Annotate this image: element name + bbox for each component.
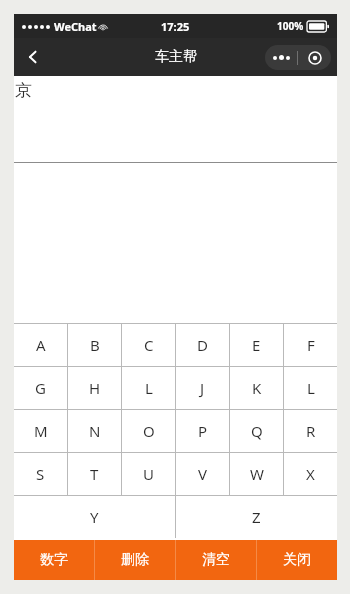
staticText: H	[89, 378, 101, 398]
button[interactable]: L	[284, 367, 337, 409]
staticText: X	[306, 464, 315, 484]
staticText: P	[198, 421, 208, 441]
staticText: N	[89, 421, 101, 441]
staticText: M	[34, 421, 48, 441]
staticText: D	[197, 335, 208, 355]
staticText: G	[35, 378, 46, 398]
staticText: 17:25	[161, 19, 190, 34]
button[interactable]: Back	[14, 38, 52, 76]
button[interactable]: T	[68, 453, 121, 495]
button[interactable]: Menu	[265, 45, 297, 70]
staticText: R	[306, 421, 316, 441]
staticText: L	[145, 378, 153, 398]
button[interactable]: Y	[14, 496, 175, 538]
button[interactable]: V	[176, 453, 229, 495]
staticText: W	[250, 464, 264, 484]
staticText: 数字	[40, 551, 68, 569]
button[interactable]: 数字	[14, 540, 94, 580]
staticText: L	[307, 378, 315, 398]
button[interactable]: 清空	[176, 540, 256, 580]
staticText: A	[36, 335, 46, 355]
button[interactable]: A	[14, 324, 67, 366]
button[interactable]: X	[284, 453, 337, 495]
button[interactable]: J	[176, 367, 229, 409]
staticText: 车主帮	[155, 48, 197, 66]
staticText: U	[143, 464, 154, 484]
staticText: 京	[15, 80, 32, 101]
staticText: 关闭	[283, 551, 311, 569]
staticText: 清空	[202, 551, 230, 569]
button[interactable]: E	[230, 324, 283, 366]
button[interactable]: M	[14, 410, 67, 452]
button[interactable]: D	[176, 324, 229, 366]
staticText: O	[143, 421, 155, 441]
staticText: F	[307, 335, 315, 355]
button[interactable]: Q	[230, 410, 283, 452]
button[interactable]: N	[68, 410, 121, 452]
button[interactable]: F	[284, 324, 337, 366]
staticText: E	[252, 335, 261, 355]
staticText: V	[198, 464, 208, 484]
staticText: Q	[251, 421, 263, 441]
button[interactable]: 删除	[95, 540, 175, 580]
button[interactable]: K	[230, 367, 283, 409]
staticText: K	[252, 378, 262, 398]
staticText: 删除	[121, 551, 149, 569]
staticText: T	[90, 464, 99, 484]
button[interactable]: R	[284, 410, 337, 452]
staticText: Y	[90, 507, 99, 527]
button[interactable]: C	[122, 324, 175, 366]
button[interactable]: 关闭	[257, 540, 337, 580]
staticText: WeChat	[54, 19, 97, 34]
button[interactable]: L	[122, 367, 175, 409]
button[interactable]: S	[14, 453, 67, 495]
staticText: B	[90, 335, 100, 355]
staticText: Z	[252, 507, 261, 527]
button[interactable]: P	[176, 410, 229, 452]
button[interactable]: O	[122, 410, 175, 452]
staticText: S	[36, 464, 45, 484]
button[interactable]: H	[68, 367, 121, 409]
button[interactable]: Z	[176, 496, 337, 538]
staticText: C	[144, 335, 154, 355]
button[interactable]: W	[230, 453, 283, 495]
button[interactable]: Close	[298, 45, 331, 70]
button[interactable]: B	[68, 324, 121, 366]
button[interactable]: U	[122, 453, 175, 495]
staticText: J	[200, 378, 205, 398]
staticText: 100%	[277, 19, 304, 33]
button[interactable]: G	[14, 367, 67, 409]
